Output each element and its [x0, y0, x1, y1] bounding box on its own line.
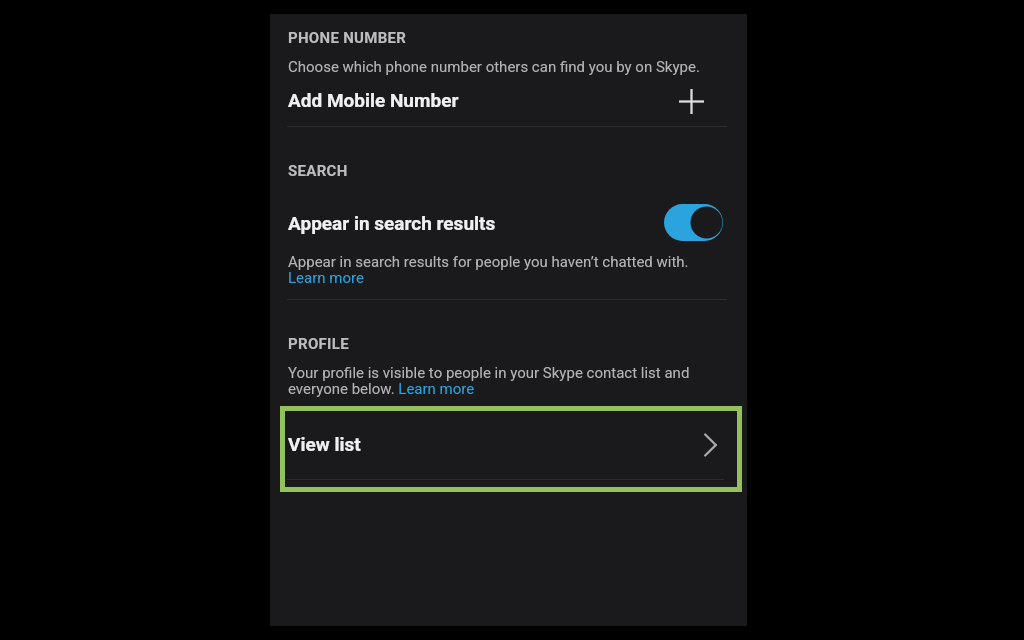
other: Open blocked contacts list — [704, 433, 717, 457]
staticText: View list — [288, 433, 361, 455]
staticText: Add Mobile Number — [288, 89, 459, 111]
button[interactable]: Add mobile number — [679, 89, 704, 114]
staticText: Appear in search results for people you … — [288, 253, 728, 287]
button[interactable]: Appear in search results — [270, 200, 747, 244]
staticText: SEARCH — [288, 162, 348, 180]
button[interactable]: Appear in search results — [664, 204, 723, 241]
staticText: Choose which phone number others can fin… — [288, 58, 728, 76]
staticText: PHONE NUMBER — [288, 29, 407, 47]
staticText: Your profile is visible to people in you… — [288, 364, 728, 398]
staticText: Appear in search results — [288, 212, 496, 234]
button[interactable]: Add Mobile Number — [270, 80, 747, 120]
staticText: PROFILE — [288, 335, 349, 353]
button[interactable]: View list — [285, 411, 737, 479]
